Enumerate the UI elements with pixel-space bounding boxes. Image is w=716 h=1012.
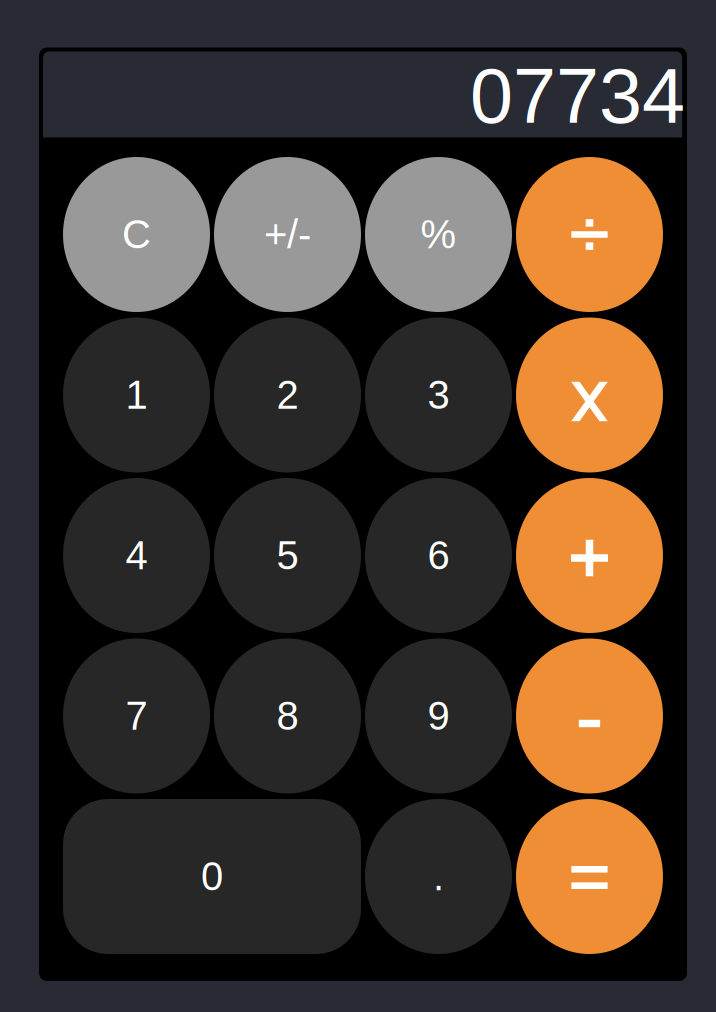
button[interactable]: Subtract <box>516 638 663 793</box>
button[interactable]: 3 <box>365 317 512 472</box>
button[interactable]: 4 <box>63 478 210 633</box>
button[interactable]: 0 <box>63 799 361 954</box>
staticText: +/- <box>264 212 311 257</box>
button[interactable]: 9 <box>365 638 512 793</box>
staticText: 1 <box>125 373 147 417</box>
staticText: 2 <box>276 373 298 417</box>
button[interactable]: Equals <box>516 799 663 954</box>
staticText: C <box>122 212 151 257</box>
staticText: . <box>433 854 444 899</box>
button[interactable]: 6 <box>365 478 512 633</box>
button[interactable]: Divide <box>516 157 663 312</box>
button[interactable]: Add <box>516 478 663 633</box>
staticText: 3 <box>427 373 449 417</box>
button[interactable]: +/- <box>214 157 361 312</box>
button[interactable]: C <box>63 157 210 312</box>
button[interactable]: 1 <box>63 317 210 472</box>
staticText: 0 <box>201 854 223 899</box>
staticText: 7 <box>125 694 147 738</box>
staticText: 4 <box>125 533 147 578</box>
button[interactable]: . <box>365 799 512 954</box>
staticText: % <box>420 212 456 257</box>
button[interactable]: 7 <box>63 638 210 793</box>
staticText: 9 <box>427 694 449 738</box>
staticText: 8 <box>276 694 298 738</box>
button[interactable]: 8 <box>214 638 361 793</box>
button[interactable]: % <box>365 157 512 312</box>
staticText: 5 <box>276 533 298 578</box>
button[interactable]: 2 <box>214 317 361 472</box>
staticText: 6 <box>427 533 449 578</box>
button[interactable]: Multiply <box>516 317 663 472</box>
staticText: 07734 <box>470 53 685 139</box>
button[interactable]: 5 <box>214 478 361 633</box>
